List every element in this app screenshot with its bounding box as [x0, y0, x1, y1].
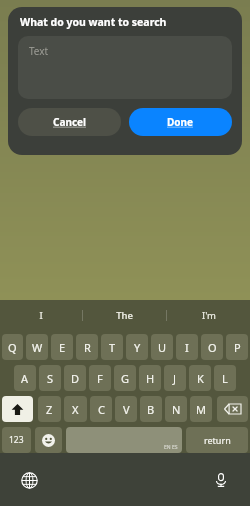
staticText: U — [158, 340, 167, 355]
staticText: P — [234, 340, 241, 355]
button[interactable]: P — [226, 334, 248, 360]
staticText: return — [204, 434, 231, 446]
staticText: EN ES — [164, 444, 178, 451]
button[interactable]: Q — [2, 334, 23, 360]
staticText: What do you want to search — [20, 15, 167, 29]
button[interactable]: H — [139, 365, 161, 391]
button[interactable]: V — [115, 396, 137, 422]
button[interactable]: R — [76, 334, 98, 360]
staticText: Z — [46, 402, 53, 417]
staticText: N — [172, 402, 181, 417]
button[interactable]: W — [26, 334, 48, 360]
button[interactable]: Dictate — [210, 469, 232, 491]
button[interactable]: S — [39, 365, 61, 391]
button[interactable]: Emoji — [35, 427, 62, 453]
staticText: O — [208, 340, 217, 355]
button[interactable]: The — [83, 300, 166, 330]
staticText: X — [72, 402, 79, 417]
staticText: Y — [134, 340, 141, 355]
staticText: Text — [29, 44, 49, 58]
button[interactable]: 123 — [2, 427, 31, 453]
button[interactable]: N — [165, 396, 187, 422]
staticText: I'm — [202, 309, 216, 322]
button[interactable]: G — [114, 365, 136, 391]
staticText: W — [32, 340, 43, 355]
button[interactable]: X — [64, 396, 87, 422]
button[interactable]: Space — [66, 427, 182, 453]
staticText: C — [98, 402, 105, 417]
staticText: L — [222, 371, 228, 386]
button[interactable]: C — [90, 396, 112, 422]
button[interactable]: Cancel — [18, 108, 121, 136]
button[interactable]: return — [186, 427, 248, 453]
staticText: Q — [8, 340, 17, 355]
button[interactable]: Delete — [217, 396, 248, 422]
button[interactable]: M — [190, 396, 212, 422]
button[interactable]: U — [151, 334, 173, 360]
button[interactable]: Y — [126, 334, 148, 360]
staticText: 123 — [9, 434, 24, 446]
staticText: The — [116, 309, 133, 322]
button[interactable]: F — [89, 365, 111, 391]
staticText: M — [196, 402, 206, 417]
staticText: T — [109, 340, 116, 355]
staticText: F — [97, 371, 103, 386]
staticText: I — [185, 340, 189, 355]
button[interactable]: B — [140, 396, 162, 422]
button[interactable]: L — [214, 365, 236, 391]
staticText: A — [21, 371, 29, 386]
button[interactable]: Change keyboard language — [18, 469, 40, 491]
button[interactable]: T — [101, 334, 123, 360]
staticText: D — [71, 371, 80, 386]
button[interactable]: Done — [129, 108, 232, 136]
button[interactable]: Text — [18, 36, 232, 99]
staticText: Done — [167, 115, 194, 129]
staticText: H — [146, 371, 155, 386]
staticText: R — [84, 340, 91, 355]
staticText: B — [147, 402, 155, 417]
staticText: V — [123, 402, 130, 417]
staticText: Cancel — [53, 115, 87, 129]
button[interactable]: D — [64, 365, 86, 391]
button[interactable]: Z — [38, 396, 61, 422]
staticText: I — [39, 309, 43, 322]
staticText: S — [47, 371, 54, 386]
button[interactable]: O — [201, 334, 223, 360]
button[interactable]: E — [51, 334, 73, 360]
button[interactable]: J — [164, 365, 186, 391]
button[interactable]: I'm — [167, 300, 250, 330]
staticText: J — [173, 371, 177, 386]
staticText: E — [59, 340, 66, 355]
button[interactable]: K — [189, 365, 211, 391]
staticText: K — [197, 371, 204, 386]
button[interactable]: A — [14, 365, 36, 391]
button[interactable]: Shift — [2, 396, 33, 422]
button[interactable]: I — [0, 300, 82, 330]
staticText: G — [121, 371, 130, 386]
button[interactable]: I — [176, 334, 198, 360]
